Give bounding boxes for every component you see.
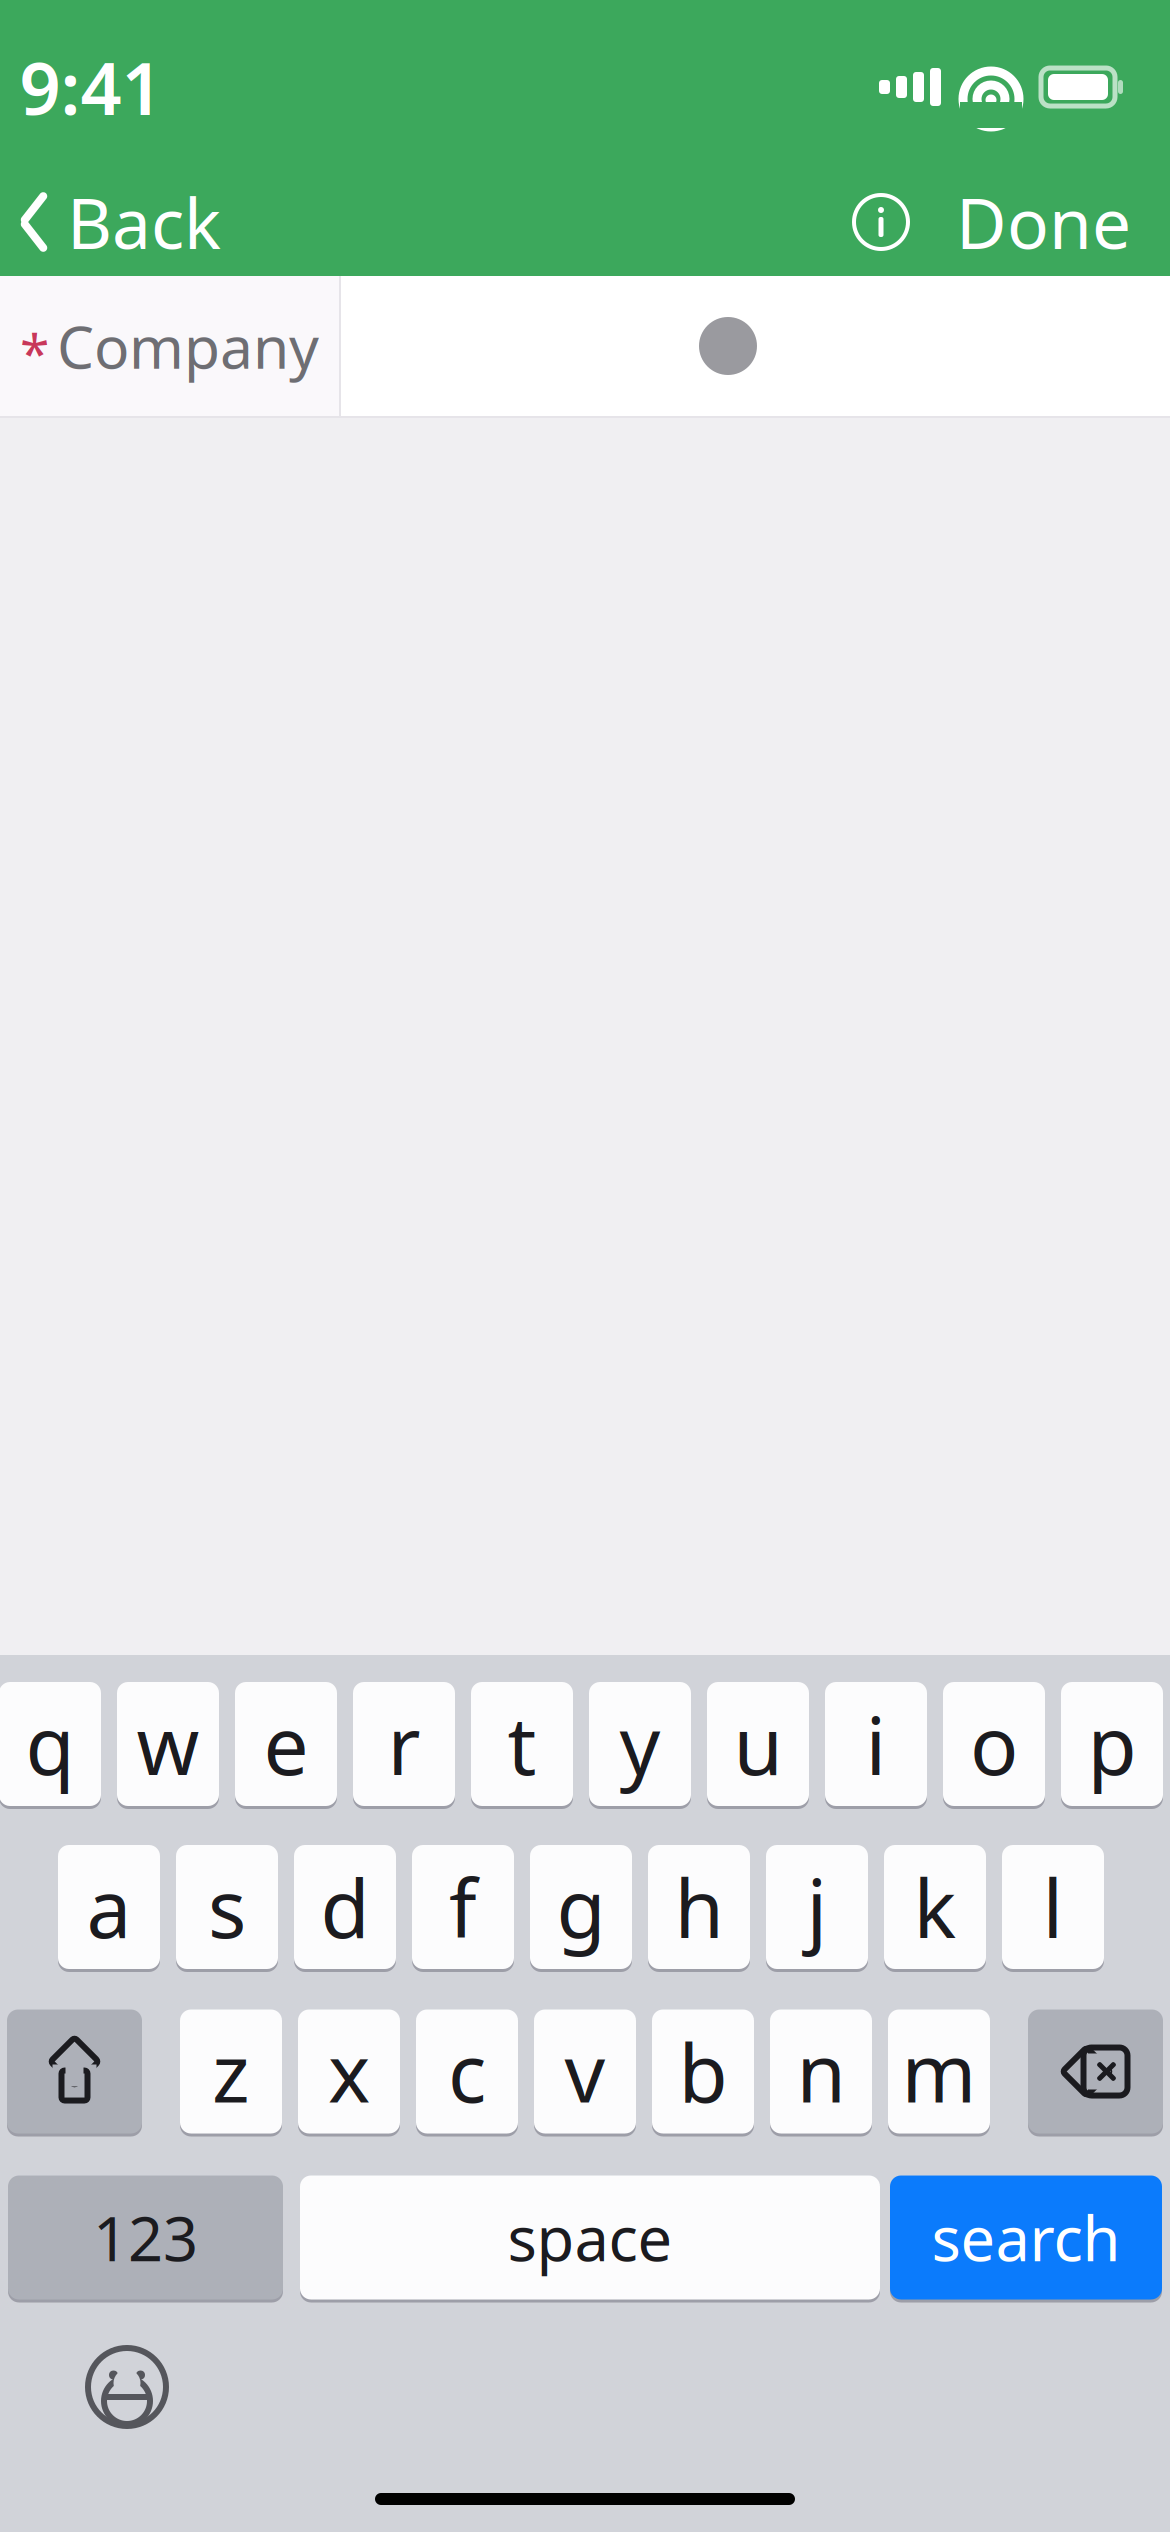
staticText: r [387,1691,420,1797]
button[interactable]: d [294,1843,396,1970]
button[interactable]: z [180,2008,282,2135]
staticText: d [320,1854,369,1960]
staticText: search [931,2197,1120,2278]
staticText: q [25,1691,74,1797]
staticText: space [507,2197,672,2278]
staticText: y [619,1691,660,1797]
staticText: z [212,2018,250,2125]
button[interactable]: 123 [8,2174,283,2301]
staticText: e [263,1691,308,1797]
staticText: 123 [93,2197,198,2278]
button[interactable]: space [300,2174,880,2301]
button[interactable]: j [766,1843,868,1970]
staticText: k [913,1854,956,1960]
button[interactable]: Shift [7,2008,142,2135]
button[interactable]: c [416,2008,518,2135]
button[interactable]: x [298,2008,400,2135]
staticText: j [806,1854,827,1960]
staticText: x [328,2018,370,2125]
button[interactable]: w [117,1680,219,1807]
button[interactable]: a [58,1843,160,1970]
button[interactable]: s [176,1843,278,1970]
button[interactable]: i [825,1680,927,1807]
staticText: g [556,1854,605,1960]
button[interactable]: h [648,1843,750,1970]
staticText: f [449,1854,477,1960]
button[interactable] [341,276,1170,416]
button[interactable]: Emoji keyboard [79,2339,175,2435]
staticText: c [448,2018,486,2125]
staticText: p [1087,1691,1136,1797]
staticText: n [796,2018,845,2125]
button[interactable]: y [589,1680,691,1807]
staticText: m [901,2018,976,2125]
staticText: Done [956,176,1131,268]
button[interactable]: p [1061,1680,1163,1807]
button[interactable]: Back [0,167,245,277]
staticText: h [674,1854,723,1960]
staticText: u [733,1691,782,1797]
button[interactable]: Done [930,167,1157,277]
button[interactable]: f [412,1843,514,1970]
staticText: t [507,1691,536,1797]
button[interactable]: t [471,1680,573,1807]
staticText: b [678,2018,727,2125]
staticText: s [208,1854,246,1960]
button[interactable]: u [707,1680,809,1807]
button[interactable]: k [884,1843,986,1970]
staticText: l [1042,1854,1063,1960]
staticText: o [970,1691,1018,1797]
staticText: Company [57,307,319,385]
button[interactable]: e [235,1680,337,1807]
staticText: i [865,1691,886,1797]
button[interactable]: v [534,2008,636,2135]
button[interactable]: Delete [1028,2008,1163,2135]
button[interactable]: b [652,2008,754,2135]
staticText: * [20,317,49,387]
staticText: Back [67,176,221,268]
staticText: a [86,1854,131,1960]
button[interactable]: n [770,2008,872,2135]
button[interactable]: g [530,1843,632,1970]
button[interactable]: m [888,2008,990,2135]
button[interactable]: search [890,2174,1162,2301]
staticText: 9:41 [19,39,162,135]
button[interactable]: o [943,1680,1045,1807]
button[interactable]: r [353,1680,455,1807]
button[interactable]: Information [832,167,930,277]
staticText: w [136,1691,199,1797]
staticText: v [564,2018,605,2125]
button[interactable]: l [1002,1843,1104,1970]
button[interactable]: q [0,1680,101,1807]
